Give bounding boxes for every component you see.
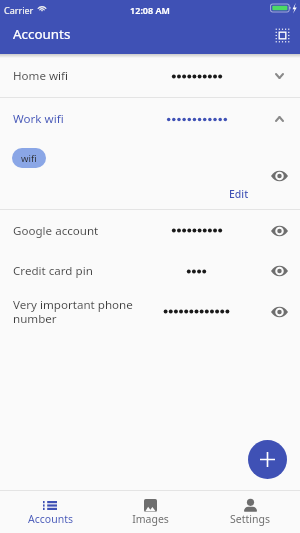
staticText: Home wifi xyxy=(13,68,139,84)
button[interactable]: Expand xyxy=(266,63,292,89)
button[interactable]: Add xyxy=(248,440,287,479)
button[interactable]: Google account xyxy=(0,210,300,251)
staticText: Very important phone number xyxy=(13,297,139,326)
staticText: Carrier xyxy=(4,4,34,16)
button[interactable]: Show password xyxy=(266,299,292,325)
staticText: Accounts xyxy=(28,512,73,526)
button[interactable]: Show password xyxy=(266,258,292,284)
button[interactable]: Home wifi xyxy=(0,55,300,97)
staticText: Accounts xyxy=(13,25,71,43)
staticText: 12:08 AM xyxy=(0,4,300,16)
staticText: Google account xyxy=(13,223,139,239)
button[interactable]: Show password xyxy=(266,163,292,189)
button[interactable]: Memory xyxy=(268,21,296,49)
staticText: Settings xyxy=(230,512,270,526)
staticText: wifi xyxy=(21,152,37,165)
button[interactable]: Credit card pin xyxy=(0,251,300,291)
button[interactable]: Show password xyxy=(266,218,292,244)
staticText: Edit xyxy=(229,187,249,201)
button[interactable]: Settings xyxy=(200,491,300,533)
button[interactable]: wifi xyxy=(12,148,46,168)
button[interactable]: Very important phone number xyxy=(0,291,300,332)
button[interactable]: Images xyxy=(100,491,200,533)
button[interactable]: Expand xyxy=(266,106,292,132)
staticText: Work wifi xyxy=(13,111,139,127)
button[interactable]: Edit xyxy=(224,185,254,203)
staticText: Credit card pin xyxy=(13,263,139,279)
button[interactable]: Work wifi xyxy=(0,98,300,140)
staticText: Images xyxy=(132,512,169,526)
button[interactable]: Accounts xyxy=(0,491,100,533)
